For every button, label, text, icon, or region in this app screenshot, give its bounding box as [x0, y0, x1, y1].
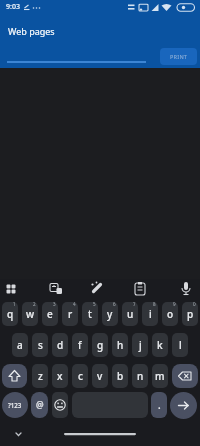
button[interactable]: a — [12, 333, 28, 357]
staticText: 9 — [173, 302, 176, 307]
staticText: 2 — [33, 302, 36, 307]
staticText: f — [78, 338, 82, 352]
button[interactable] — [88, 280, 106, 298]
button[interactable] — [170, 392, 197, 419]
button[interactable]: @ — [31, 392, 48, 418]
button[interactable] — [172, 364, 198, 388]
staticText: v — [97, 369, 103, 383]
button[interactable]: j — [132, 333, 148, 357]
staticText: 4 — [73, 302, 76, 307]
staticText: ?123 — [8, 401, 22, 409]
staticText: . — [158, 398, 161, 412]
button[interactable]: r — [62, 302, 78, 326]
staticText: y — [107, 307, 113, 321]
staticText: x — [57, 369, 63, 383]
button[interactable] — [47, 280, 65, 298]
button[interactable]: ?123 — [2, 392, 28, 418]
staticText: i — [149, 307, 152, 321]
staticText: Web pages — [8, 25, 55, 37]
staticText: 6 — [113, 302, 116, 307]
staticText: m — [155, 369, 165, 383]
button[interactable]: e — [42, 302, 58, 326]
button[interactable]: t — [82, 302, 98, 326]
staticText: 3 — [53, 302, 56, 307]
button[interactable]: h — [112, 333, 128, 357]
button[interactable] — [177, 280, 195, 298]
button[interactable]: g — [92, 333, 108, 357]
staticText: w — [26, 307, 35, 321]
button[interactable] — [2, 280, 20, 298]
button[interactable] — [131, 280, 149, 298]
staticText: u — [127, 307, 134, 321]
staticText: h — [117, 338, 124, 352]
staticText: r — [68, 307, 73, 321]
button[interactable] — [2, 364, 27, 388]
staticText: 7 — [133, 302, 136, 307]
button[interactable]: p — [182, 302, 198, 326]
button[interactable]: l — [172, 333, 188, 357]
button[interactable]: i — [142, 302, 158, 326]
button[interactable]: v — [92, 364, 108, 388]
button[interactable]: . — [151, 392, 167, 418]
staticText: e — [47, 307, 53, 321]
button[interactable]: k — [152, 333, 168, 357]
button[interactable]: m — [152, 364, 168, 388]
staticText: 5 — [93, 302, 96, 307]
staticText: a — [17, 338, 23, 352]
staticText: @ — [36, 399, 44, 411]
staticText: z — [38, 369, 43, 383]
staticText: PRINT — [170, 53, 188, 60]
button[interactable]: w — [22, 302, 38, 326]
button[interactable]: PRINT — [160, 48, 197, 65]
staticText: 8 — [153, 302, 156, 307]
staticText: p — [187, 307, 194, 321]
button[interactable]: d — [52, 333, 68, 357]
staticText: b — [117, 369, 124, 383]
staticText: 9:03 — [6, 2, 20, 12]
button[interactable]: u — [122, 302, 138, 326]
button[interactable]: f — [72, 333, 88, 357]
staticText: 0 — [193, 302, 196, 307]
staticText: n — [137, 369, 144, 383]
staticText: s — [38, 338, 43, 352]
staticText: t — [88, 307, 92, 321]
button[interactable]: z — [32, 364, 48, 388]
button[interactable] — [52, 392, 68, 418]
button[interactable] — [72, 392, 148, 418]
staticText: g — [97, 338, 104, 352]
staticText: j — [139, 338, 142, 352]
staticText: q — [7, 307, 14, 321]
staticText: 1 — [13, 302, 16, 307]
staticText: c — [78, 369, 83, 383]
button[interactable]: b — [112, 364, 128, 388]
staticText: k — [157, 338, 163, 352]
button[interactable]: n — [132, 364, 148, 388]
button[interactable]: c — [72, 364, 88, 388]
staticText: d — [57, 338, 64, 352]
staticText: o — [167, 307, 174, 321]
button[interactable]: y — [102, 302, 118, 326]
button[interactable]: o — [162, 302, 178, 326]
button[interactable]: x — [52, 364, 68, 388]
button[interactable]: q — [2, 302, 18, 326]
button[interactable] — [12, 426, 26, 440]
staticText: l — [179, 338, 182, 352]
button[interactable]: s — [32, 333, 48, 357]
